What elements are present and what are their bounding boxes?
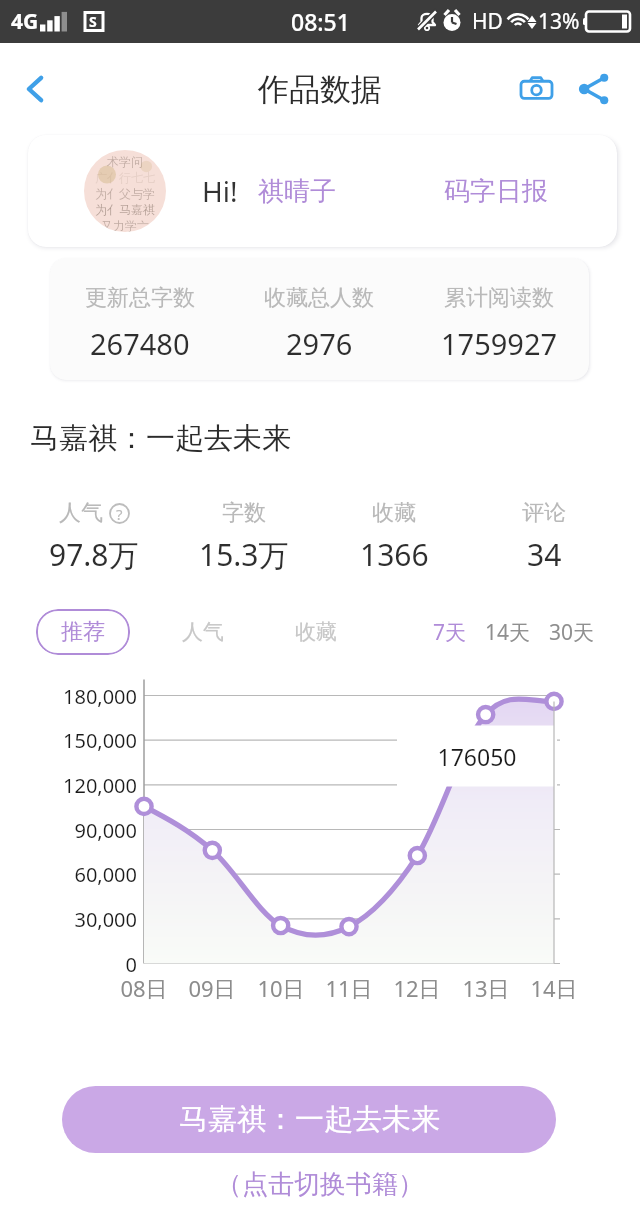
staticText: 30天 [549,618,595,647]
staticText: 14日 [514,973,594,1003]
staticText: 14天 [485,618,531,647]
staticText: 为亻父与学 [95,186,155,201]
button[interactable]: 30天 [547,612,597,653]
staticText: Hi! [202,172,238,210]
staticText: 150,000 [0,727,137,754]
staticText: 推荐 [61,618,105,646]
staticText: 13日 [446,973,526,1003]
staticText: 90,000 [0,817,137,844]
staticText: 10日 [241,973,321,1003]
staticText: 0 [0,951,137,978]
staticText: 180,000 [0,683,137,710]
button[interactable]: 术学问 [28,135,617,247]
staticText: 09日 [172,973,252,1003]
staticText: 97.8万 [49,534,139,575]
button[interactable]: （点击切换书籍） [212,1164,428,1205]
staticText: 为亻马嘉祺 [95,202,155,217]
staticText: 评论 [522,499,566,527]
button[interactable]: Back [7,61,63,117]
staticText: 收藏 [372,499,416,527]
staticText: 2976 [286,324,353,363]
staticText: 7天 [433,618,467,647]
staticText: S [89,12,97,31]
staticText: 又力学亠 [101,218,149,232]
staticText: 120,000 [0,772,137,799]
staticText: 08日 [104,973,184,1003]
staticText: 176050 [397,741,557,772]
staticText: 4G [11,7,39,36]
staticText: 30,000 [0,906,137,933]
button[interactable]: Share [571,66,617,112]
staticText: 收藏总人数 [264,284,374,312]
staticText: 收藏 [295,619,337,645]
staticText: 广亻行七七 [95,170,155,185]
staticText: 累计阅读数 [444,284,554,312]
button[interactable]: 人气 [176,613,230,651]
staticText: 马嘉祺：一起去未来 [30,420,291,457]
staticText: 15.3万 [199,534,289,575]
staticText: 更新总字数 [85,284,195,312]
button[interactable]: Camera [513,66,559,112]
staticText: 码字日报 [444,175,548,208]
staticText: （点击切换书籍） [216,1168,424,1201]
staticText: HD [472,7,503,36]
staticText: ? [116,504,123,524]
staticText: 13% [538,7,580,36]
staticText: 马嘉祺：一起去未来 [179,1101,440,1138]
button[interactable]: 收藏 [289,613,343,651]
button[interactable]: 马嘉祺：一起去未来 [62,1086,556,1153]
button[interactable]: 14天 [483,612,533,653]
button[interactable]: 推荐 [36,609,130,655]
staticText: 作品数据 [258,70,382,109]
staticText: 267480 [90,324,190,363]
staticText: 1759927 [441,324,558,363]
staticText: 12日 [377,973,457,1003]
staticText: 11日 [309,973,389,1003]
staticText: 术学问 [107,154,143,169]
staticText: 祺晴子 [258,175,336,208]
staticText: 字数 [222,499,266,527]
staticText: 1366 [360,534,429,575]
staticText: 08:51 [291,6,350,37]
staticText: 60,000 [0,861,137,888]
staticText: 34 [527,534,562,575]
button[interactable]: 7天 [431,612,469,653]
staticText: 人气 [182,619,224,645]
staticText: 人气 [59,499,103,527]
